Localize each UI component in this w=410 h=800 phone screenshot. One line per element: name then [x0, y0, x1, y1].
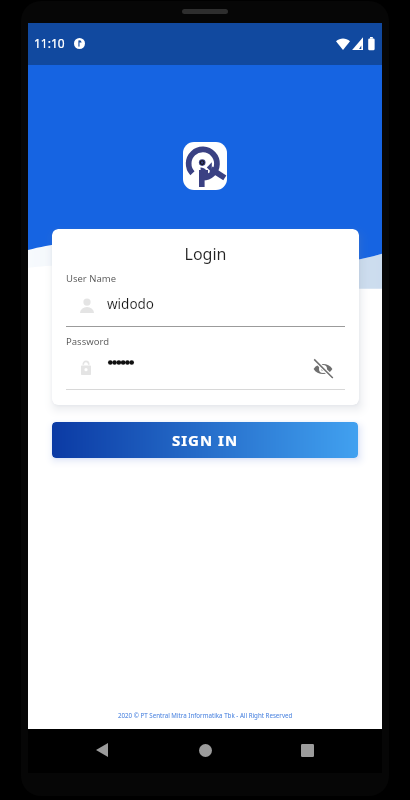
- staticText: User Name: [66, 272, 117, 285]
- button[interactable]: Home: [188, 733, 222, 767]
- staticText: Password: [66, 335, 109, 348]
- button[interactable]: SIGN IN: [52, 422, 358, 458]
- staticText: widodo: [107, 295, 155, 313]
- staticText: 2020 © PT Sentral Mitra Informatika Tbk …: [118, 711, 293, 719]
- button[interactable]: Toggle password visibility: [309, 355, 337, 383]
- button[interactable]: Recent apps: [290, 733, 324, 767]
- staticText: Login: [52, 243, 359, 265]
- staticText: SIGN IN: [172, 430, 239, 450]
- staticText: 11:10: [34, 35, 65, 51]
- button[interactable]: Back: [85, 733, 119, 767]
